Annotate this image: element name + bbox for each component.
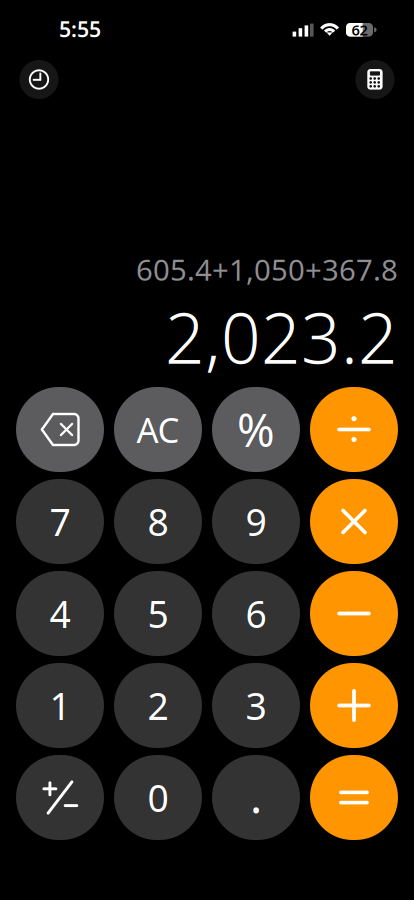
button[interactable]: 6	[212, 571, 300, 656]
button[interactable]: 9	[212, 479, 300, 564]
staticText: 3	[245, 681, 266, 730]
staticText: 5	[147, 589, 168, 638]
staticText: 1	[49, 681, 70, 730]
button[interactable]: 4	[16, 571, 104, 656]
button[interactable]: 7	[16, 479, 104, 564]
button[interactable]: Minus	[310, 571, 398, 656]
button[interactable]: Divide	[310, 387, 398, 472]
button[interactable]: 8	[114, 479, 202, 564]
staticText: 6	[245, 589, 266, 638]
button[interactable]: %	[212, 387, 300, 472]
staticText: 4	[49, 589, 70, 638]
button[interactable]: History	[19, 60, 58, 99]
staticText: 2,023.2	[165, 291, 398, 383]
button[interactable]: Plus minus	[16, 755, 104, 840]
staticText: 8	[147, 497, 168, 546]
staticText: 5:55	[59, 15, 101, 43]
button[interactable]: 2	[114, 663, 202, 748]
staticText: 62	[351, 20, 367, 40]
staticText: 7	[49, 497, 70, 546]
staticText: 605.4+1,050+367.8	[136, 250, 398, 289]
button[interactable]: AC	[114, 387, 202, 472]
staticText: 9	[245, 497, 266, 546]
staticText: AC	[136, 406, 179, 452]
staticText: %	[237, 399, 275, 460]
button[interactable]: 1	[16, 663, 104, 748]
button[interactable]: Multiply	[310, 479, 398, 564]
staticText: 2	[147, 681, 168, 730]
button[interactable]: 5	[114, 571, 202, 656]
button[interactable]: Plus	[310, 663, 398, 748]
button[interactable]: Delete	[16, 387, 104, 472]
button[interactable]: 3	[212, 663, 300, 748]
button[interactable]: Calculator mode	[355, 60, 394, 99]
button[interactable]: 0	[114, 755, 202, 840]
staticText: 0	[147, 773, 168, 822]
button[interactable]: Decimal point	[212, 755, 300, 840]
button[interactable]: Equals	[310, 755, 398, 840]
staticText: .	[250, 766, 262, 826]
